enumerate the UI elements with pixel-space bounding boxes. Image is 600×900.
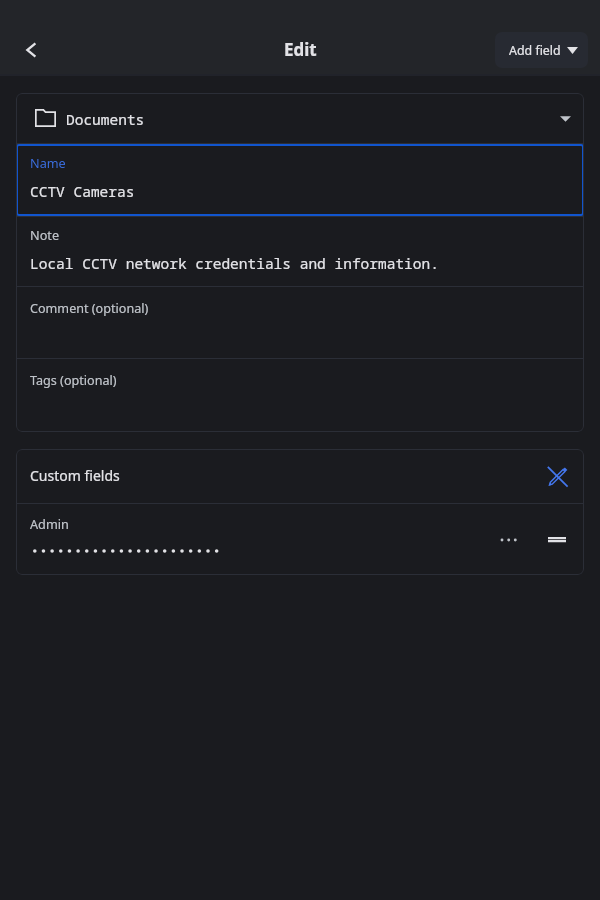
- button[interactable]: Back: [9, 28, 53, 72]
- button[interactable]: Name: [16, 144, 584, 216]
- button[interactable]: More options: [492, 526, 526, 554]
- button[interactable]: Reorder field: [540, 529, 574, 559]
- staticText: CCTV Cameras: [30, 181, 135, 201]
- staticText: Admin: [30, 515, 69, 532]
- staticText: Comment (optional): [30, 300, 149, 317]
- button[interactable]: Comment (optional): [16, 287, 584, 358]
- staticText: Edit: [284, 38, 317, 61]
- button[interactable]: Note: [16, 217, 584, 286]
- button[interactable]: Tags (optional): [16, 359, 584, 432]
- staticText: Note: [30, 226, 60, 243]
- staticText: Local CCTV network credentials and infor…: [30, 253, 439, 273]
- button[interactable]: Stop editing custom fields: [540, 459, 576, 495]
- staticText: Tags (optional): [30, 372, 117, 389]
- staticText: Custom fields: [30, 466, 120, 485]
- button[interactable]: Add field: [495, 32, 588, 68]
- staticText: Name: [30, 154, 66, 171]
- staticText: Add field: [509, 42, 561, 59]
- button[interactable]: Documents: [16, 93, 584, 143]
- staticText: Documents: [66, 109, 145, 129]
- button[interactable]: Admin: [16, 504, 584, 575]
